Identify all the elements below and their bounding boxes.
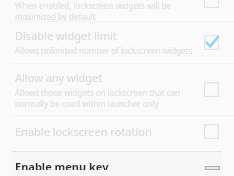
- button[interactable]: When enabled, lockscreen widgets will be…: [0, 0, 234, 21]
- button[interactable]: Enable lockscreen rotation checkbox: [204, 124, 219, 139]
- staticText: Allows those widgets on lockscreen that …: [15, 87, 181, 109]
- button[interactable]: Allow any widget checkbox: [204, 82, 219, 97]
- button[interactable]: Enable lockscreen rotation: [0, 116, 234, 147]
- button[interactable]: Disable widget limit: [0, 22, 234, 63]
- staticText: Enable lockscreen rotation: [15, 124, 152, 139]
- staticText: Disable widget limit: [15, 28, 117, 43]
- button[interactable]: Enable menu key checkbox: [205, 166, 220, 170]
- button[interactable]: Maximize widgets checkbox: [204, 0, 219, 8]
- button[interactable]: Enable menu key: [12, 151, 222, 176]
- button[interactable]: Disable widget limit checkbox: [204, 35, 219, 50]
- staticText: When enabled, lockscreen widgets will be…: [15, 0, 171, 21]
- staticText: Enable menu key: [15, 159, 109, 170]
- staticText: Allow any widget: [15, 70, 103, 85]
- staticText: Allows unlimited number of lockscreen wi…: [15, 45, 193, 56]
- button[interactable]: Allow any widget: [0, 64, 234, 115]
